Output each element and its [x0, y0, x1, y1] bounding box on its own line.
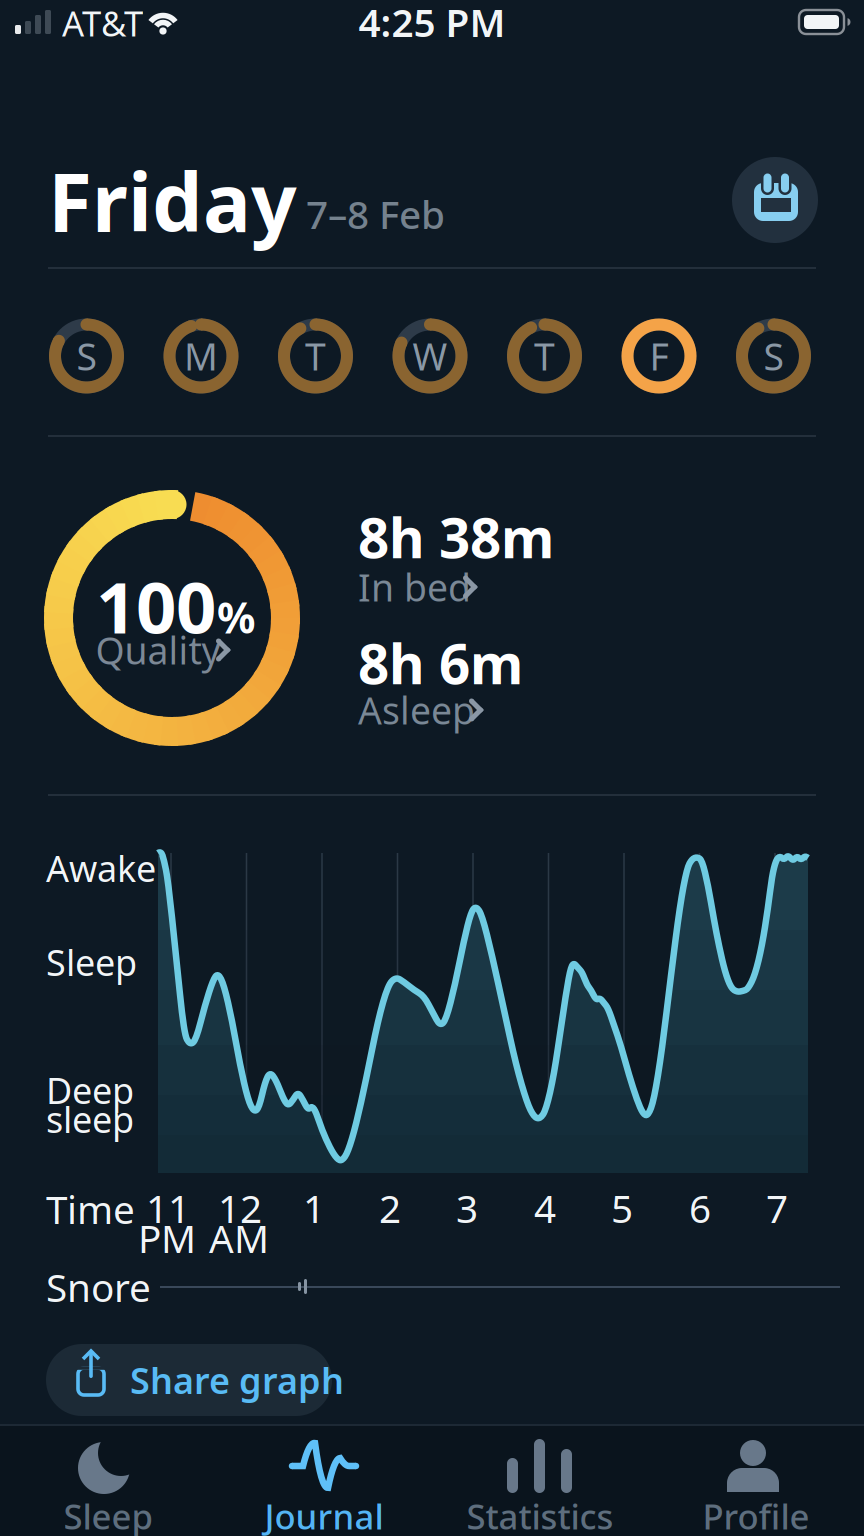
staticText: Asleep [358, 685, 475, 735]
staticText: 6 [689, 1182, 711, 1234]
button[interactable]: Share graph [46, 1344, 332, 1416]
staticText: 8h 38m [358, 501, 554, 573]
button[interactable]: Profile [648, 1426, 864, 1536]
button[interactable]: Asleep [358, 690, 488, 730]
staticText: PM [138, 1212, 196, 1264]
staticText: Sleep [63, 1493, 152, 1536]
staticText: In bed [358, 562, 471, 612]
staticText: Profile [702, 1493, 809, 1536]
staticText: T [305, 331, 326, 381]
staticText: AT&T [62, 0, 143, 46]
staticText: Friday [48, 148, 297, 254]
staticText: S [763, 331, 783, 381]
staticText: sleep [46, 1095, 134, 1143]
staticText: 7 [766, 1182, 788, 1234]
button[interactable]: Sleep [0, 1426, 216, 1536]
staticText: 4:25 PM [358, 0, 505, 48]
staticText: 8h 6m [358, 627, 523, 699]
button[interactable]: Journal [216, 1426, 432, 1536]
staticText: 11 [146, 1182, 190, 1234]
staticText: M [184, 331, 218, 381]
staticText: T [534, 331, 555, 381]
staticText: W [412, 331, 447, 381]
staticText: % [217, 589, 255, 645]
staticText: 2 [379, 1182, 401, 1234]
staticText: F [649, 331, 668, 381]
button[interactable]: Statistics [432, 1426, 648, 1536]
staticText: Statistics [466, 1493, 613, 1536]
staticText: Deep [46, 1066, 134, 1114]
staticText: Awake [46, 844, 156, 892]
staticText: 7–8 Feb [306, 188, 445, 240]
staticText: S [76, 331, 96, 381]
staticText: AM [209, 1212, 269, 1264]
button[interactable]: Quality [102, 630, 242, 670]
staticText: Snore [46, 1261, 151, 1313]
staticText: Journal [264, 1493, 383, 1536]
staticText: Sleep [46, 938, 137, 986]
staticText: Share graph [130, 1356, 344, 1404]
staticText: Time [46, 1183, 135, 1235]
staticText: 4 [534, 1182, 556, 1234]
staticText: 100 [96, 559, 216, 653]
button[interactable]: Calendar [732, 157, 818, 243]
staticText: 5 [611, 1182, 633, 1234]
staticText: 1 [303, 1182, 325, 1234]
staticText: 12 [218, 1182, 262, 1234]
button[interactable]: In bed [358, 567, 478, 607]
staticText: Quality [95, 625, 220, 675]
staticText: 3 [456, 1182, 478, 1234]
